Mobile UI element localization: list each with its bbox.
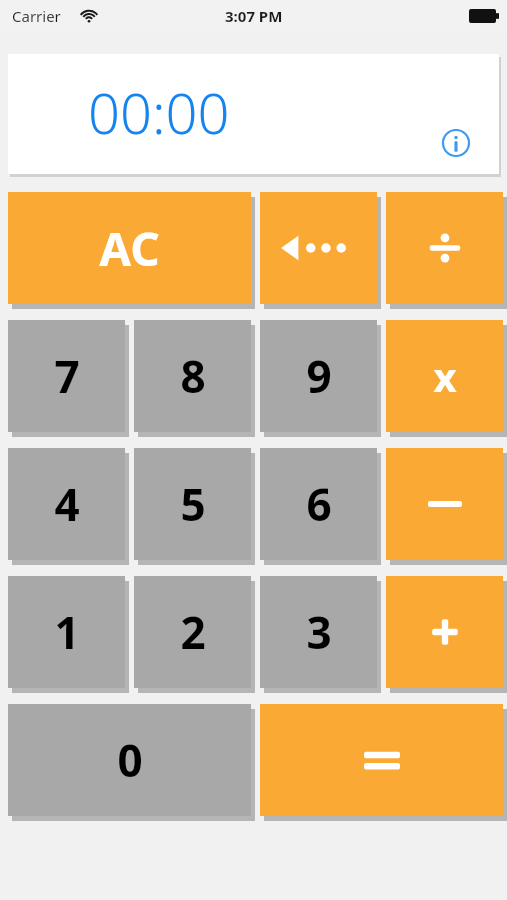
staticText: x xyxy=(433,349,457,403)
staticText: 00:00 xyxy=(88,74,230,150)
staticText: 3:07 PM xyxy=(225,6,283,26)
button[interactable]: 7 xyxy=(8,320,125,432)
button[interactable]: 4 xyxy=(8,448,125,560)
button[interactable]: Backspace xyxy=(260,192,377,304)
staticText: 6 xyxy=(306,474,332,534)
button[interactable]: 8 xyxy=(134,320,251,432)
staticText: 2 xyxy=(180,602,206,662)
staticText: 4 xyxy=(54,474,80,534)
button[interactable]: Zero xyxy=(8,704,251,816)
button[interactable]: 9 xyxy=(260,320,377,432)
button[interactable]: Multiply xyxy=(386,320,503,432)
button[interactable]: 1 xyxy=(8,576,125,688)
staticText: 1 xyxy=(54,602,80,662)
staticText: Carrier xyxy=(12,6,61,26)
staticText: 9 xyxy=(306,346,332,406)
button[interactable]: 3 xyxy=(260,576,377,688)
staticText: 7 xyxy=(54,346,80,406)
staticText: 5 xyxy=(180,474,206,534)
button[interactable]: Divide xyxy=(386,192,503,304)
button[interactable]: Subtract xyxy=(386,448,503,560)
button[interactable]: Info xyxy=(441,128,471,158)
staticText: 8 xyxy=(180,346,206,406)
staticText: AC xyxy=(99,217,160,280)
button[interactable]: Equals xyxy=(260,704,503,816)
button[interactable]: 2 xyxy=(134,576,251,688)
button[interactable]: 00:00 xyxy=(8,54,499,174)
staticText: 3 xyxy=(306,602,332,662)
button[interactable]: Add xyxy=(386,576,503,688)
button[interactable]: All clear xyxy=(8,192,251,304)
staticText: 0 xyxy=(117,730,143,790)
button[interactable]: 6 xyxy=(260,448,377,560)
button[interactable]: 5 xyxy=(134,448,251,560)
